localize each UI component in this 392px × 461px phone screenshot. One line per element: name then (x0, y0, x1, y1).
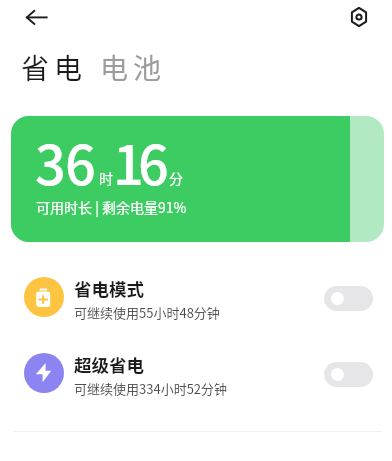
staticText: 省 (21, 47, 50, 88)
staticText: 电 (100, 47, 129, 88)
staticText: 6 (138, 122, 169, 200)
staticText: 时 (99, 168, 113, 188)
button[interactable]: 省 (18, 47, 88, 91)
staticText: 可用时长 | 剩余电量91% (36, 197, 187, 217)
button[interactable]: Toggle 省电模式 (324, 286, 373, 311)
staticText: 池 (133, 47, 162, 88)
staticText: 电 (54, 47, 83, 88)
button[interactable]: 3 (11, 116, 384, 242)
button[interactable]: 电 (97, 47, 167, 91)
staticText: 省电模式 (74, 276, 144, 301)
button[interactable]: Back (20, 3, 53, 32)
button[interactable]: Settings (343, 1, 375, 33)
button[interactable]: 超级省电 (0, 335, 392, 411)
button[interactable]: 省电模式 (0, 259, 392, 335)
button[interactable]: Toggle 超级省电 (324, 362, 373, 387)
staticText: 可继续使用55小时48分钟 (74, 303, 220, 322)
staticText: 6 (65, 122, 96, 200)
staticText: 3 (35, 122, 66, 200)
staticText: 可继续使用334小时52分钟 (74, 379, 228, 398)
staticText: 1 (113, 122, 144, 200)
staticText: 超级省电 (74, 352, 144, 377)
staticText: 分 (169, 168, 183, 188)
